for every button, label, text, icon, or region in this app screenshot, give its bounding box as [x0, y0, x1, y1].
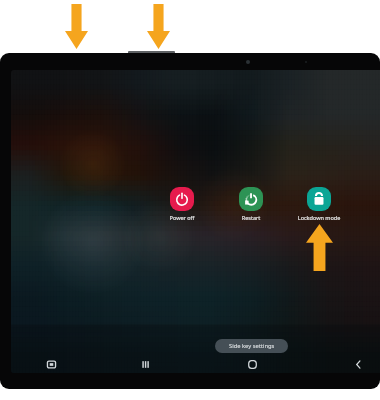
button[interactable]: Keyboard — [39, 354, 63, 373]
button[interactable]: Home — [240, 354, 264, 373]
button[interactable]: Side key settings — [215, 339, 288, 353]
staticText: Lockdown mode — [295, 214, 343, 221]
staticText: Restart — [227, 214, 275, 221]
button[interactable]: Lockdown mode — [295, 187, 343, 221]
button[interactable]: Power off — [158, 187, 206, 221]
staticText: Power off — [158, 214, 206, 221]
button[interactable]: Restart — [227, 187, 275, 221]
button[interactable]: Back — [346, 354, 370, 373]
button[interactable]: Recents — [133, 354, 157, 373]
staticText: Side key settings — [229, 342, 275, 350]
